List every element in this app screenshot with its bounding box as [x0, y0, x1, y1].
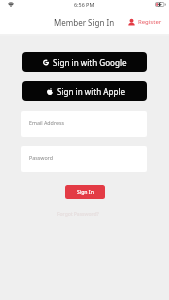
staticText: Sign in with Apple: [57, 86, 126, 97]
button[interactable]: Register: [122, 15, 169, 29]
staticText: Register: [138, 18, 162, 26]
staticText: Sign In: [77, 189, 94, 196]
staticText: Email Address: [29, 119, 65, 126]
staticText: Sign in with Google: [53, 57, 127, 68]
staticText: 6:56 PM: [74, 1, 95, 8]
button[interactable]: Sign In: [65, 185, 105, 199]
button[interactable]: Email Address: [21, 111, 147, 137]
button[interactable]: Password: [21, 146, 147, 172]
staticText: Member Sign In: [54, 17, 115, 28]
button[interactable]: Forgot Password?: [55, 209, 101, 220]
button[interactable]: Sign in with Apple: [22, 81, 147, 101]
button[interactable]: Sign in with Google: [22, 52, 147, 72]
staticText: Password: [29, 154, 53, 161]
